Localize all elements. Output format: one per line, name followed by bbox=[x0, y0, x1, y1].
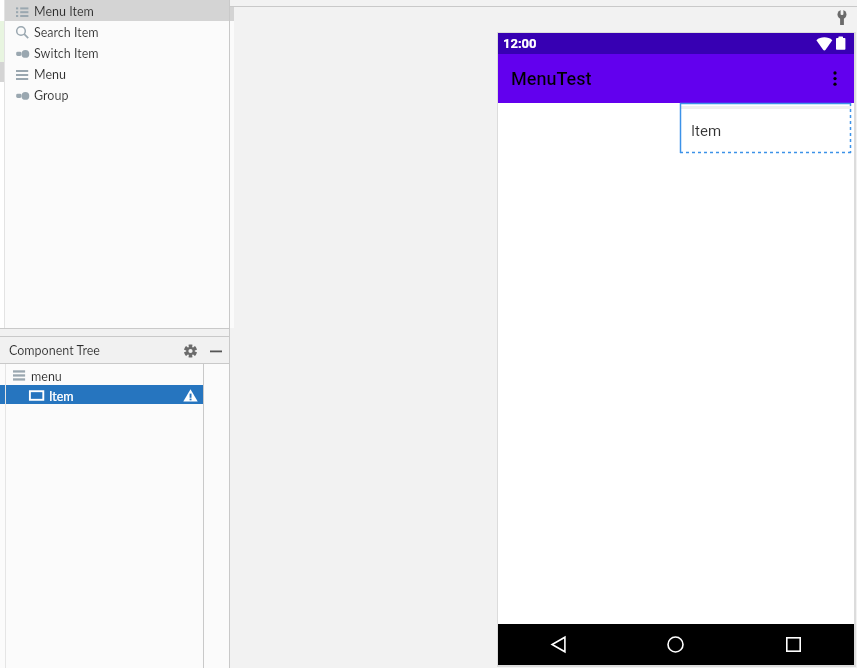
button[interactable]: menu bbox=[0, 364, 229, 385]
button[interactable]: Group bbox=[5, 84, 234, 105]
staticText: Menu Item bbox=[34, 4, 94, 19]
staticText: Menu bbox=[34, 67, 66, 82]
staticText: Search Item bbox=[34, 25, 99, 40]
staticText: 12:00 bbox=[503, 36, 537, 51]
button[interactable]: Search Item bbox=[5, 21, 234, 42]
button[interactable]: Settings bbox=[182, 343, 198, 359]
button[interactable]: Back bbox=[498, 624, 616, 665]
staticText: Switch Item bbox=[34, 46, 99, 61]
button[interactable]: Item bbox=[680, 103, 851, 153]
button[interactable]: Design tools bbox=[830, 7, 854, 28]
staticText: menu bbox=[31, 369, 62, 384]
staticText: Component Tree bbox=[9, 343, 100, 358]
button[interactable]: Home bbox=[616, 624, 735, 665]
button[interactable]: Menu Item bbox=[5, 0, 234, 21]
button[interactable]: More options bbox=[823, 54, 847, 103]
button[interactable]: Minimize bbox=[208, 343, 224, 359]
staticText: Item bbox=[49, 389, 74, 404]
button[interactable]: Menu bbox=[5, 63, 234, 84]
staticText: Item bbox=[691, 122, 722, 140]
button[interactable]: Item bbox=[0, 385, 203, 404]
staticText: MenuTest bbox=[511, 68, 592, 89]
button[interactable]: Recents bbox=[735, 624, 854, 665]
staticText: Group bbox=[34, 88, 69, 103]
button[interactable]: Switch Item bbox=[5, 42, 234, 63]
